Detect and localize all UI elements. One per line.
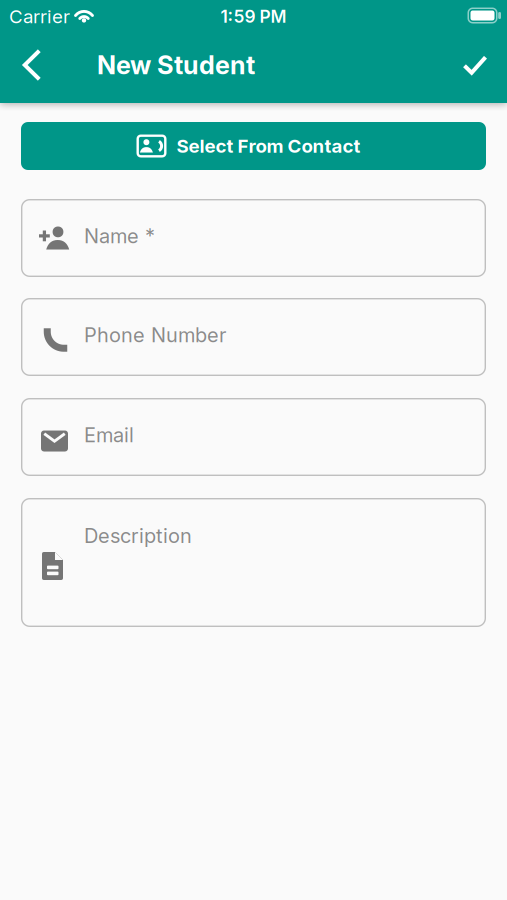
button[interactable]: Back [0, 32, 61, 98]
button[interactable]: Description [0, 498, 507, 627]
button[interactable]: Select From Contact [0, 122, 507, 170]
staticText: Email [84, 423, 134, 447]
button[interactable]: Name * [0, 199, 507, 277]
staticText: Name * [84, 224, 155, 248]
staticText: Description [84, 524, 192, 548]
staticText: Carrier [9, 5, 70, 27]
button[interactable]: Phone Number [0, 298, 507, 376]
staticText: Phone Number [84, 323, 226, 347]
staticText: 1:59 PM [220, 6, 286, 27]
button[interactable]: Save [443, 32, 507, 98]
button[interactable]: Email [0, 398, 507, 476]
staticText: Select From Contact [176, 135, 360, 157]
staticText: New Student [97, 50, 255, 80]
